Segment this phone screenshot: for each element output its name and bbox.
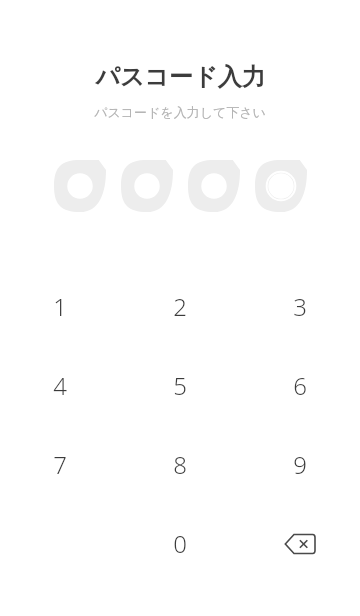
button[interactable]: 0 — [120, 504, 240, 583]
staticText: 3 — [293, 290, 307, 323]
button[interactable]: 8 — [120, 425, 240, 504]
button[interactable]: 7 — [0, 425, 120, 504]
button[interactable]: 9 — [240, 425, 360, 504]
button[interactable]: 6 — [240, 346, 360, 425]
button[interactable]: 4 — [0, 346, 120, 425]
staticText: 6 — [293, 369, 307, 402]
button[interactable]: 2 — [120, 267, 240, 346]
staticText: パスコードを入力して下さい — [94, 104, 266, 120]
staticText: 7 — [53, 448, 67, 481]
staticText: 2 — [173, 290, 187, 323]
button[interactable]: 1 — [0, 267, 120, 346]
staticText: 5 — [173, 369, 187, 402]
button[interactable]: 3 — [240, 267, 360, 346]
button[interactable]: Backspace — [240, 504, 360, 583]
staticText: 0 — [173, 527, 187, 560]
staticText: 8 — [173, 448, 187, 481]
staticText: 1 — [53, 290, 67, 323]
staticText: パスコード入力 — [95, 62, 266, 92]
staticText: 9 — [293, 448, 307, 481]
staticText: 4 — [53, 369, 67, 402]
button[interactable]: 5 — [120, 346, 240, 425]
